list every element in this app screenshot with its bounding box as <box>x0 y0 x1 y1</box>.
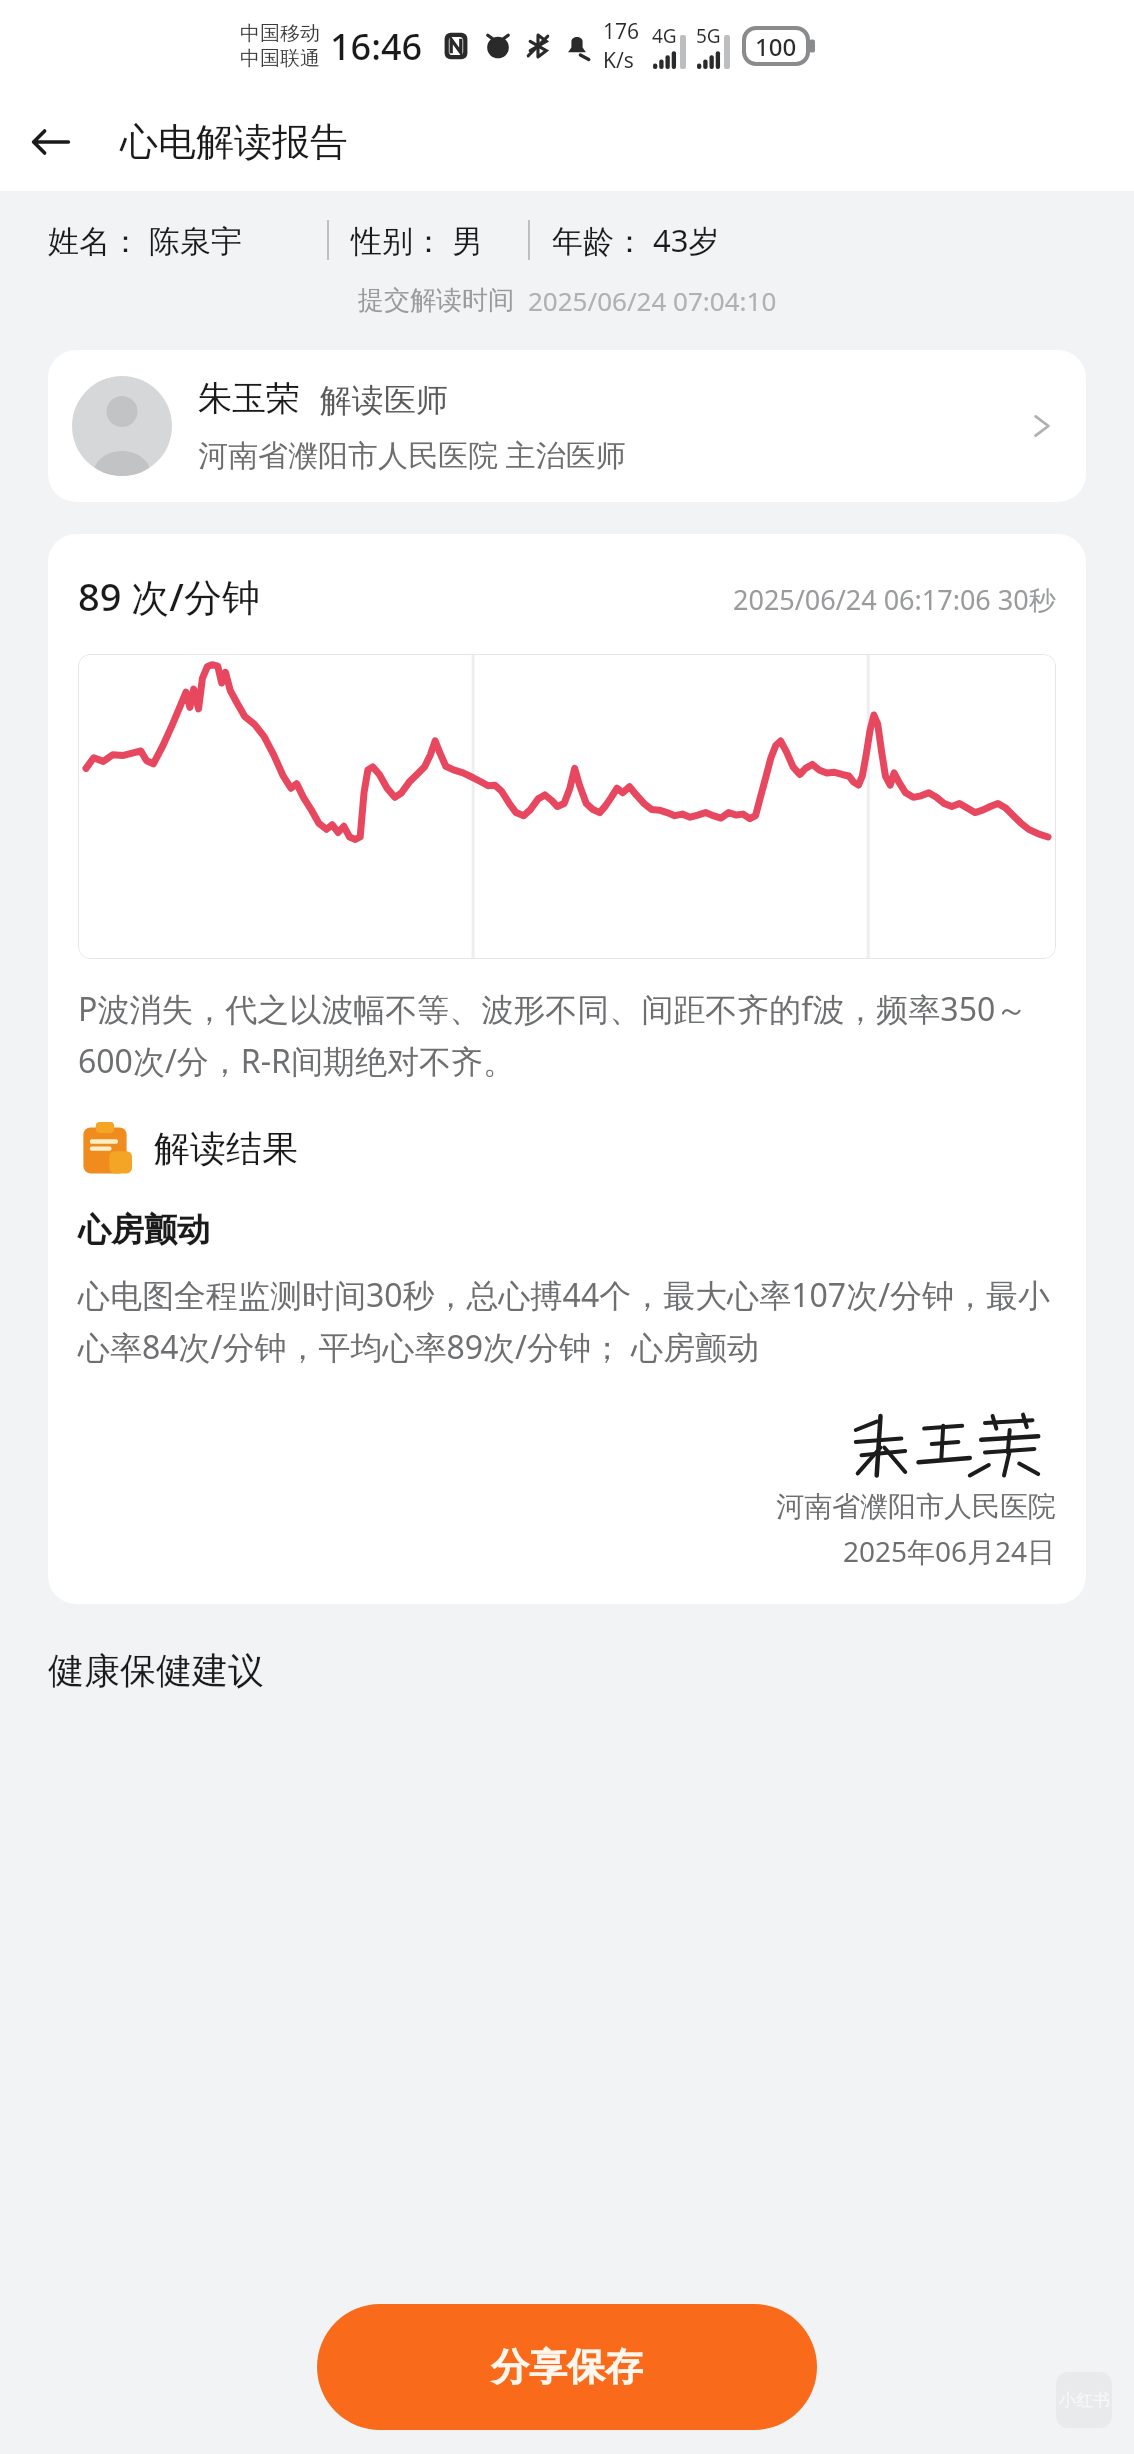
staticText: 解读结果 <box>154 1126 298 1171</box>
staticText: 176 <box>603 17 640 46</box>
staticText: 小红书 <box>1059 2390 1110 2411</box>
staticText: 河南省濮阳市人民医院 <box>776 1489 1056 1524</box>
staticText: 4G <box>652 23 677 49</box>
staticText: 16:46 <box>330 22 423 71</box>
staticText: 朱玉荣 <box>198 377 300 420</box>
button[interactable]: 朱玉荣 <box>48 350 1086 502</box>
staticText: P波消失，代之以波幅不等、波形不同、间距不齐的f波，频率350～600次/分，R… <box>78 987 1056 1083</box>
staticText: 心电图全程监测时间30秒，总心搏44个，最大心率107次/分钟，最小心率84次/… <box>78 1273 1056 1369</box>
staticText: 中国移动 <box>240 21 320 46</box>
staticText: 中国联通 <box>240 46 320 71</box>
staticText: 心房颤动 <box>78 1209 210 1251</box>
staticText: 2025年06月24日 <box>843 1532 1056 1570</box>
staticText: 2025/06/24 06:17:06 30秒 <box>733 581 1056 618</box>
staticText: 2025/06/24 07:04:10 <box>528 283 777 318</box>
staticText: 河南省濮阳市人民医院 主治医师 <box>198 434 626 475</box>
staticText: 性别： 男 <box>351 219 484 261</box>
staticText: 姓名： 陈泉宇 <box>48 219 243 261</box>
staticText: 5G <box>696 23 721 49</box>
staticText: 分享保存 <box>491 2343 643 2391</box>
staticText: 心电解读报告 <box>120 118 348 166</box>
staticText: K/s <box>603 46 634 75</box>
staticText: 89 次/分钟 <box>78 570 260 622</box>
button[interactable]: Back <box>22 113 80 171</box>
button[interactable]: 分享保存 <box>317 2304 817 2430</box>
staticText: 提交解读时间 <box>358 284 514 317</box>
staticText: 解读医师 <box>320 380 448 420</box>
staticText: 健康保健建议 <box>48 1648 264 1693</box>
staticText: 年龄： 43岁 <box>552 219 720 261</box>
staticText: 100 <box>755 30 797 63</box>
